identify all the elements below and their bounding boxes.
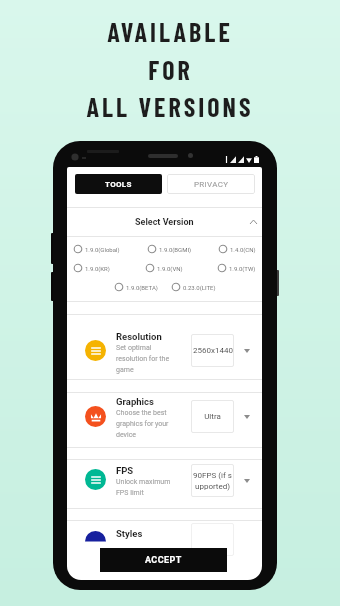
staticText: Unlock maximum FPS limit — [116, 478, 171, 497]
staticText: Styles — [116, 528, 143, 539]
staticText: Set optimal resolution for the game — [116, 344, 170, 374]
staticText: AVAILABLE — [107, 16, 233, 47]
button[interactable]: 1.9.0(VN) — [145, 263, 183, 273]
button[interactable]: 90FPS (if s upported) — [191, 464, 234, 497]
staticText: ALL VERSIONS — [86, 91, 254, 122]
button[interactable]: Select Version — [67, 208, 262, 236]
button[interactable]: Resolution — [67, 314, 262, 379]
button[interactable]: Ultra — [191, 400, 234, 433]
staticText: 1.9.0(BETA) — [126, 284, 158, 291]
other: Expand — [244, 349, 250, 353]
button[interactable]: PRIVACY — [167, 174, 255, 194]
staticText: 90FPS (if s upported) — [193, 471, 232, 491]
button[interactable]: FPS — [67, 459, 262, 508]
button[interactable]: 0.23.0(LITE) — [171, 282, 216, 292]
button[interactable]: 1.9.0(KR) — [73, 263, 110, 273]
staticText: FOR — [148, 54, 193, 85]
other: Expand — [244, 479, 250, 483]
staticText: Graphics — [116, 396, 154, 407]
button[interactable]: 2560x1440 — [191, 334, 234, 367]
button[interactable]: 1.9.0(TW) — [217, 263, 256, 273]
staticText: 1.9.0(KR) — [85, 265, 110, 272]
staticText: 1.4.0(CN) — [230, 246, 256, 253]
staticText: PRIVACY — [194, 180, 229, 189]
staticText: 1.9.0(VN) — [157, 265, 183, 272]
staticText: Select Version — [135, 217, 194, 228]
staticText: Resolution — [116, 331, 162, 342]
button[interactable]: Graphics — [67, 392, 262, 447]
staticText: 0.23.0(LITE) — [183, 284, 216, 291]
button[interactable] — [191, 523, 234, 556]
button[interactable]: ACCEPT — [100, 548, 227, 572]
button[interactable]: 1.9.0(Global) — [73, 244, 120, 254]
staticText: 1.9.0(TW) — [229, 265, 256, 272]
button[interactable]: 1.4.0(CN) — [218, 244, 256, 254]
other: Expand — [244, 415, 250, 419]
button[interactable]: 1.9.0(BETA) — [114, 282, 158, 292]
staticText: ACCEPT — [145, 555, 182, 566]
button[interactable]: 1.9.0(BGMI) — [147, 244, 192, 254]
staticText: FPS — [116, 465, 134, 476]
button[interactable]: Styles — [67, 520, 262, 580]
button[interactable]: TOOLS — [75, 174, 162, 194]
staticText: 1.9.0(Global) — [85, 246, 120, 253]
staticText: Ultra — [204, 412, 221, 421]
staticText: 1.9.0(BGMI) — [159, 246, 192, 253]
staticText: Choose the best graphics for your device — [116, 409, 169, 439]
staticText: 2560x1440 — [193, 346, 233, 355]
staticText: TOOLS — [105, 180, 132, 189]
